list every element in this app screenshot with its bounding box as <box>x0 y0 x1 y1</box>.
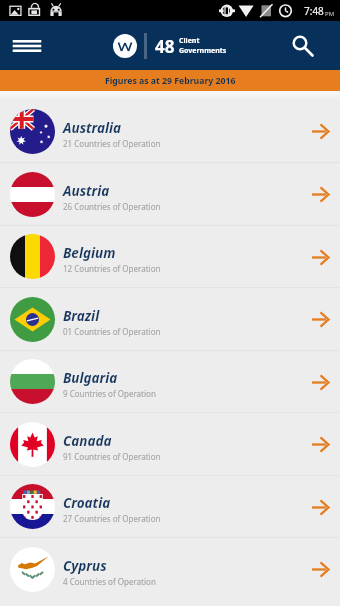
staticText: Canada <box>63 432 112 450</box>
staticText: Australia <box>63 119 122 137</box>
staticText: 27 Countries of Operation <box>63 513 161 524</box>
button[interactable]: Open Canada <box>300 424 340 464</box>
button[interactable]: Cyprus <box>0 538 340 600</box>
button[interactable]: Canada <box>0 413 340 475</box>
staticText: 91 Countries of Operation <box>63 451 161 462</box>
button[interactable]: Search <box>290 31 320 61</box>
staticText: 4 Countries of Operation <box>63 576 156 587</box>
staticText: 21 Countries of Operation <box>63 138 161 149</box>
button[interactable]: Croatia <box>0 476 340 537</box>
staticText: Cyprus <box>63 557 107 575</box>
button[interactable]: Open Belgium <box>300 237 340 277</box>
staticText: 01 Countries of Operation <box>63 326 161 337</box>
staticText: Figures as at 29 February 2016 <box>105 75 236 87</box>
staticText: 26 Countries of Operation <box>63 201 161 212</box>
staticText: Belgium <box>63 244 116 262</box>
button[interactable]: Menu <box>7 26 47 66</box>
staticText: 12 Countries of Operation <box>63 263 161 274</box>
staticText: 9 Countries of Operation <box>63 388 156 399</box>
staticText: Client <box>179 36 200 46</box>
button[interactable]: Open Cyprus <box>300 549 340 589</box>
staticText: Croatia <box>63 494 111 512</box>
button[interactable]: Open Bulgaria <box>300 362 340 402</box>
staticText: 7:48 <box>304 4 324 18</box>
staticText: Austria <box>63 182 110 200</box>
button[interactable]: Open Austria <box>300 174 340 214</box>
staticText: PM <box>325 10 335 18</box>
button[interactable]: Open Australia <box>300 111 340 151</box>
button[interactable]: Brazil <box>0 288 340 350</box>
staticText: Governments <box>179 46 227 56</box>
button[interactable]: Austria <box>0 163 340 225</box>
staticText: Bulgaria <box>63 369 118 387</box>
button[interactable]: Belgium <box>0 226 340 287</box>
staticText: Brazil <box>63 307 100 325</box>
button[interactable]: Open Brazil <box>300 299 340 339</box>
button[interactable]: Australia <box>0 100 340 162</box>
staticText: 48 <box>155 35 175 58</box>
button[interactable]: Open Croatia <box>300 487 340 527</box>
button[interactable]: Bulgaria <box>0 351 340 412</box>
